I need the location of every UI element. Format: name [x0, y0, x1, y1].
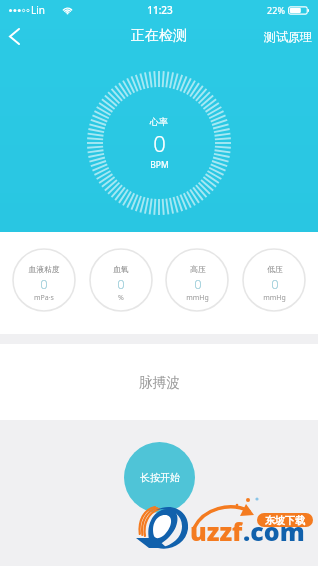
staticText: 高压: [190, 264, 206, 274]
staticText: 0: [194, 275, 202, 293]
staticText: 0: [40, 275, 48, 293]
staticText: 测试原理: [264, 29, 312, 44]
button[interactable]: 返回: [0, 16, 30, 56]
staticText: 心率: [150, 116, 168, 127]
staticText: Lin: [31, 3, 45, 17]
staticText: 正在检测: [131, 27, 187, 45]
staticText: 低压: [267, 264, 283, 274]
staticText: uzzf: [190, 514, 243, 548]
button[interactable]: 血氧: [89, 248, 153, 312]
staticText: 长按开始: [140, 471, 180, 484]
staticText: BPM: [150, 159, 169, 171]
staticText: .com: [243, 514, 305, 548]
button[interactable]: 测试原理: [254, 21, 318, 52]
button[interactable]: 血液粘度: [12, 248, 76, 312]
staticText: mmHg: [263, 293, 286, 303]
staticText: 血液粘度: [28, 264, 60, 274]
staticText: 0: [117, 275, 125, 293]
staticText: mPa·s: [34, 293, 54, 303]
staticText: mmHg: [186, 293, 209, 303]
staticText: 0: [153, 128, 166, 158]
button[interactable]: 长按开始: [124, 442, 195, 513]
button[interactable]: 高压: [165, 248, 229, 312]
staticText: 脉搏波: [139, 374, 180, 391]
staticText: 22%: [267, 4, 285, 16]
staticText: 血氧: [113, 264, 129, 274]
button[interactable]: 低压: [242, 248, 306, 312]
staticText: 东坡下载: [265, 514, 305, 527]
staticText: 11:23: [147, 3, 173, 17]
staticText: %: [118, 293, 124, 303]
staticText: 0: [271, 275, 279, 293]
